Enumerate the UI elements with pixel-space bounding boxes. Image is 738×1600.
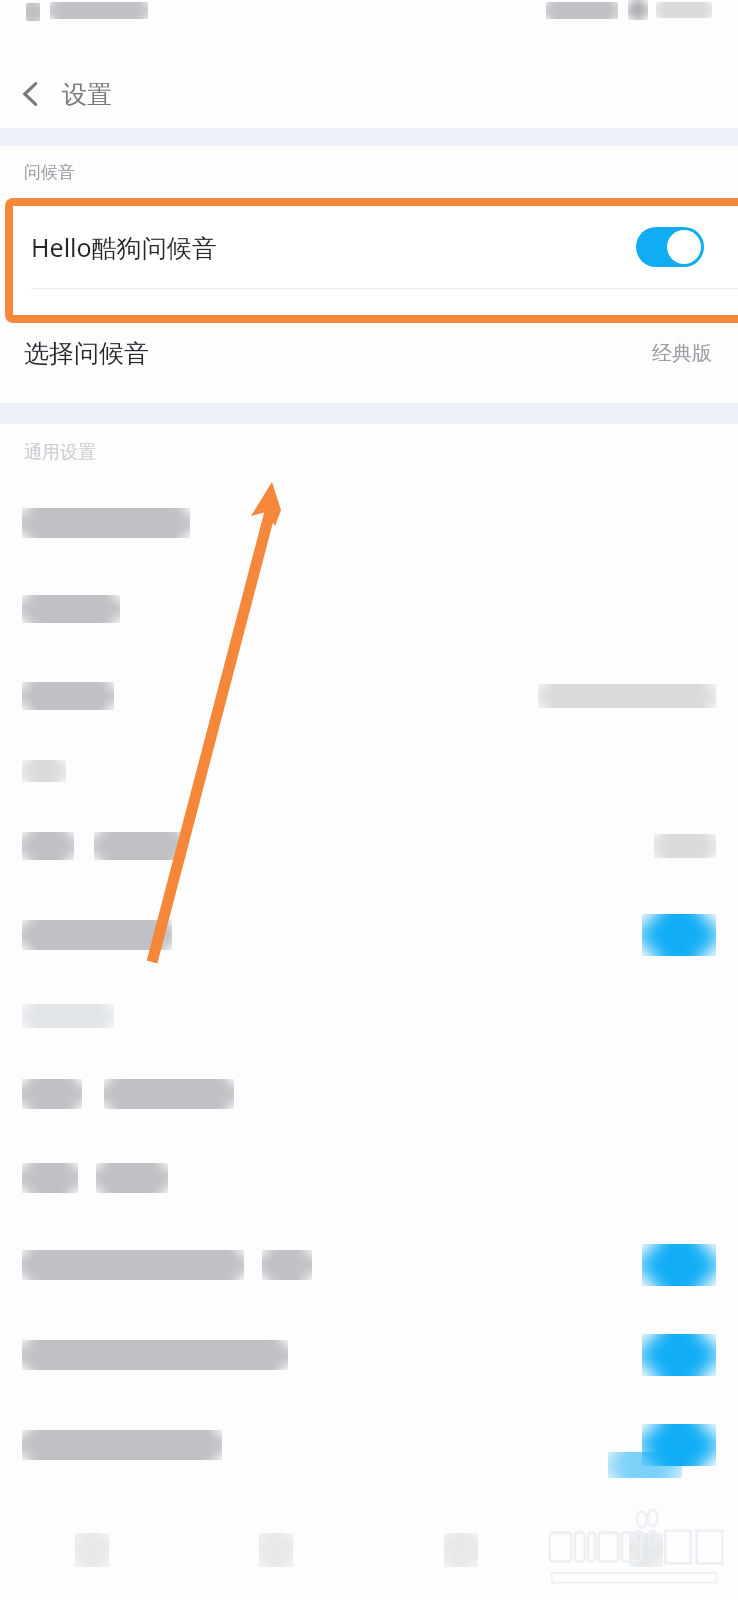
- button[interactable]: [0, 1052, 738, 1136]
- button[interactable]: Hello酷狗问候音: [13, 206, 738, 288]
- staticText: 问候音: [24, 162, 75, 183]
- staticText: Hello酷狗问候音: [31, 230, 217, 264]
- button[interactable]: Mine: [553, 1500, 738, 1600]
- staticText: 选择问候音: [24, 338, 149, 369]
- button[interactable]: Home: [0, 1500, 184, 1600]
- button[interactable]: 选择问候音: [0, 323, 738, 383]
- button[interactable]: [0, 1310, 738, 1400]
- staticText: 通用设置: [24, 441, 96, 464]
- button[interactable]: [0, 566, 738, 652]
- button[interactable]: [0, 652, 738, 740]
- button[interactable]: Toggle greeting sound: [636, 227, 704, 267]
- button[interactable]: Discover: [184, 1500, 368, 1600]
- button[interactable]: [0, 1400, 738, 1490]
- button[interactable]: [0, 802, 738, 890]
- button[interactable]: [0, 1220, 738, 1310]
- button[interactable]: [0, 480, 738, 566]
- button[interactable]: Library: [368, 1500, 553, 1600]
- button[interactable]: [0, 890, 738, 980]
- button[interactable]: Back: [0, 60, 62, 128]
- staticText: 设置: [62, 79, 112, 110]
- staticText: 经典版: [652, 341, 712, 366]
- button[interactable]: [0, 1136, 738, 1220]
